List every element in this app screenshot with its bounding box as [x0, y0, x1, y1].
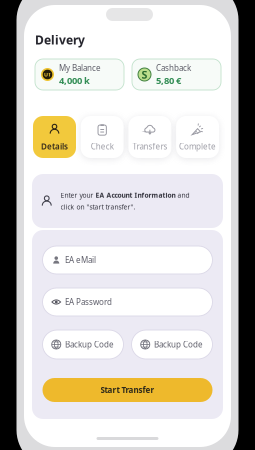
staticText: Backup Code: [154, 339, 203, 350]
staticText: click on "start transfer".: [60, 202, 135, 211]
staticText: Transfers: [132, 141, 167, 152]
button[interactable]: UT: [35, 59, 124, 90]
staticText: Start Transfer: [100, 385, 154, 395]
staticText: 4,000 k: [59, 74, 90, 86]
staticText: EA eMail: [65, 255, 96, 265]
staticText: My Balance: [59, 62, 101, 73]
staticText: S: [141, 67, 147, 82]
button[interactable]: Complete: [176, 116, 219, 158]
button[interactable]: Transfers: [128, 116, 171, 158]
button[interactable]: S: [132, 59, 221, 90]
staticText: EA Password: [65, 297, 112, 307]
staticText: Check: [91, 141, 114, 152]
button[interactable]: Backup Code: [42, 330, 123, 359]
staticText: Cashback: [156, 62, 191, 73]
button[interactable]: EA eMail: [42, 246, 212, 274]
staticText: 5,80 €: [156, 74, 181, 86]
staticText: Enter your EA Account Information and: [60, 191, 189, 199]
button[interactable]: Backup Code: [131, 330, 212, 359]
button[interactable]: Start Transfer: [42, 378, 212, 402]
staticText: Details: [41, 141, 68, 152]
staticText: Complete: [179, 141, 216, 152]
staticText: Delivery: [35, 32, 85, 48]
staticText: UT: [44, 71, 51, 78]
button[interactable]: Details: [33, 116, 76, 158]
button[interactable]: Check: [81, 116, 124, 158]
button[interactable]: EA Password: [42, 288, 212, 316]
staticText: Backup Code: [65, 339, 114, 350]
